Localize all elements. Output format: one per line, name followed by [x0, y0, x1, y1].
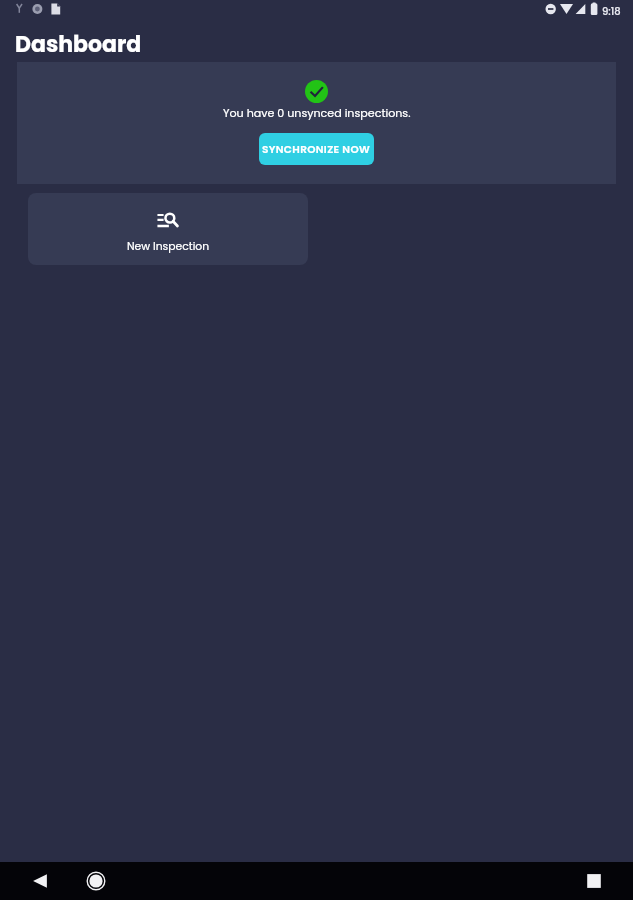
staticText: 9:18 — [602, 4, 621, 18]
other: All inspections synced — [305, 80, 328, 103]
button[interactable]: Home — [76, 862, 116, 900]
staticText: You have 0 unsynced inspections. — [223, 105, 411, 121]
staticText: New Inspection — [127, 239, 210, 254]
button[interactable]: Recent apps — [574, 862, 614, 900]
button[interactable]: New Inspection — [28, 193, 308, 265]
staticText: SYNCHRONIZE NOW — [262, 142, 371, 157]
button[interactable]: SYNCHRONIZE NOW — [259, 133, 374, 165]
button[interactable]: Back — [20, 862, 60, 900]
staticText: Dashboard — [15, 29, 142, 60]
